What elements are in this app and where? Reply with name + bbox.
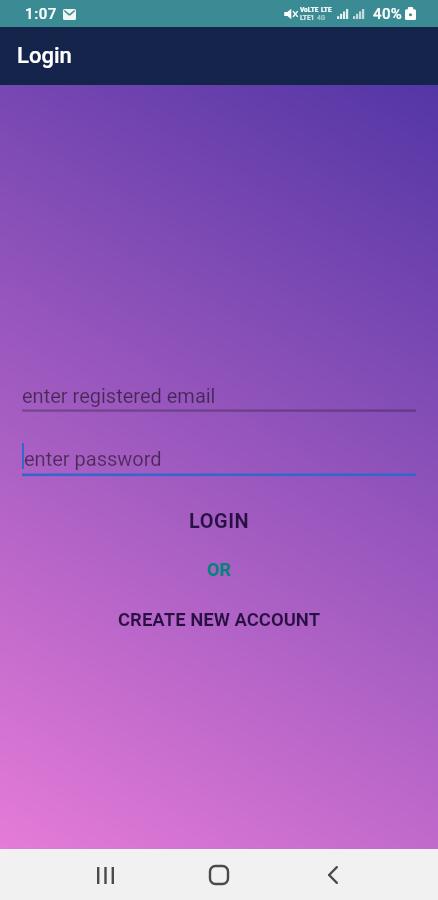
staticText: enter password [24,447,162,470]
button[interactable]: CREATE NEW ACCOUNT [0,600,438,640]
staticText: OR [207,559,231,580]
button[interactable]: Home [195,851,243,899]
staticText: LTE1 [300,14,315,22]
staticText: CREATE NEW ACCOUNT [118,609,321,631]
button[interactable]: Back [309,851,357,899]
staticText: LTE [321,6,332,14]
button[interactable]: enter registered email [22,377,416,411]
staticText: 1:07 [25,5,57,23]
staticText: enter registered email [22,384,216,407]
staticText: Login [17,43,72,69]
button[interactable]: LOGIN [0,500,438,540]
staticText: 40% [373,5,403,23]
staticText: 4G [317,14,326,22]
staticText: LOGIN [189,509,250,532]
button[interactable]: enter password [22,441,416,475]
button[interactable]: Recent apps [81,851,129,899]
staticText: VoLTE [300,6,319,14]
